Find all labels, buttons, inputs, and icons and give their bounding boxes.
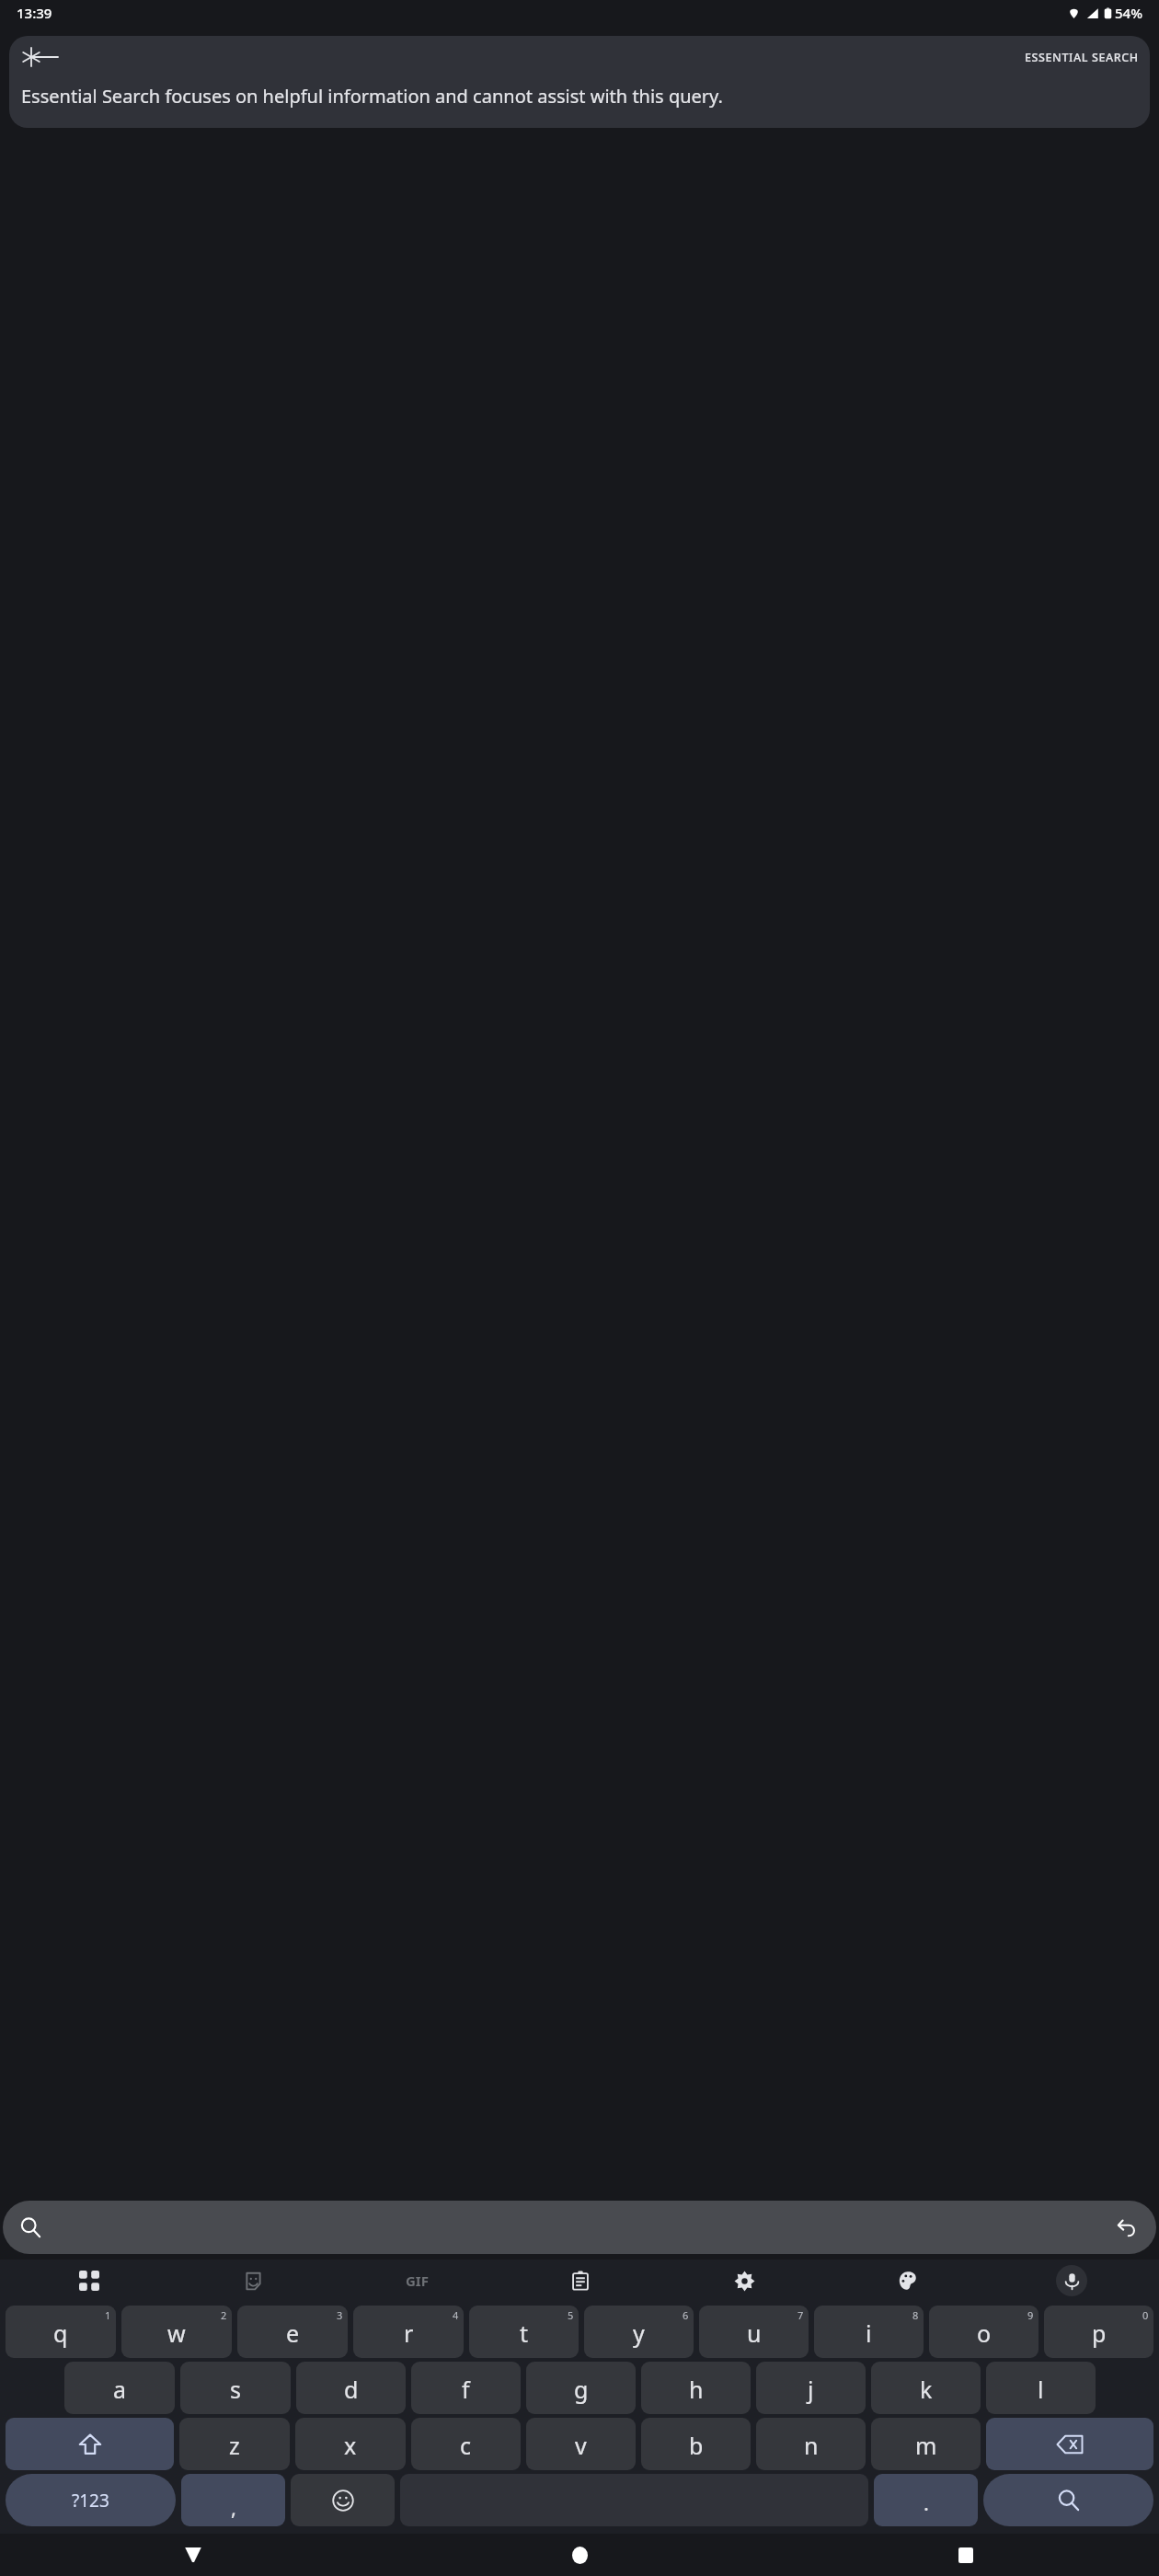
staticText: 0	[1142, 2308, 1149, 2322]
button[interactable]: Backspace	[986, 2418, 1153, 2470]
staticText: .	[924, 2489, 929, 2516]
button[interactable]: t	[469, 2306, 579, 2358]
button[interactable]: k	[871, 2362, 981, 2414]
staticText: d	[344, 2374, 359, 2405]
button[interactable]: Shift	[6, 2418, 174, 2470]
button[interactable]: GIF	[335, 2260, 499, 2302]
staticText: 9	[1027, 2308, 1034, 2322]
staticText: 54%	[1115, 4, 1142, 22]
button[interactable]: n	[756, 2418, 866, 2470]
staticText: 2	[221, 2308, 227, 2322]
staticText: 8	[912, 2308, 919, 2322]
button[interactable]: y	[584, 2306, 694, 2358]
staticText: o	[977, 2317, 992, 2349]
button[interactable]: .	[874, 2474, 978, 2526]
button[interactable]: q	[6, 2306, 116, 2358]
staticText: y	[633, 2317, 645, 2349]
button[interactable]: o	[929, 2306, 1039, 2358]
button[interactable]: w	[121, 2306, 232, 2358]
staticText: ESSENTIAL SEARCH	[1025, 50, 1139, 65]
staticText: 5	[568, 2308, 574, 2322]
button[interactable]: Voice input	[1056, 2265, 1087, 2296]
button[interactable]: l	[986, 2362, 1096, 2414]
button[interactable]: ,	[181, 2474, 285, 2526]
staticText: 1	[105, 2308, 111, 2322]
staticText: x	[344, 2430, 357, 2461]
staticText: l	[1038, 2374, 1044, 2405]
staticText: ,	[231, 2493, 236, 2521]
staticText: b	[689, 2430, 704, 2461]
staticText: 13:39	[17, 4, 52, 22]
button[interactable]: Hide keyboard	[0, 2534, 386, 2576]
button[interactable]: ESSENTIAL SEARCH	[9, 36, 1150, 128]
button[interactable]: e	[237, 2306, 348, 2358]
staticText: e	[286, 2317, 300, 2349]
staticText: g	[574, 2374, 589, 2405]
button[interactable]: z	[179, 2418, 290, 2470]
button[interactable]: ?123	[6, 2474, 176, 2526]
staticText: u	[747, 2317, 762, 2349]
button[interactable]: r	[353, 2306, 464, 2358]
button[interactable]: g	[526, 2362, 636, 2414]
button[interactable]: v	[526, 2418, 636, 2470]
staticText: p	[1092, 2317, 1107, 2349]
staticText: q	[53, 2317, 68, 2349]
staticText: 3	[337, 2308, 343, 2322]
staticText: f	[462, 2374, 470, 2405]
staticText: v	[575, 2430, 587, 2461]
staticText: i	[866, 2317, 872, 2349]
button[interactable]: Recents	[773, 2534, 1159, 2576]
button[interactable]: b	[641, 2418, 751, 2470]
staticText: w	[167, 2317, 186, 2349]
staticText: GIF	[406, 2271, 429, 2290]
staticText: t	[520, 2317, 529, 2349]
button[interactable]: Clipboard	[499, 2260, 662, 2302]
button[interactable]: Search	[3, 2201, 1156, 2254]
staticText: 6	[683, 2308, 689, 2322]
button[interactable]: Emoji	[291, 2474, 395, 2526]
button[interactable]: Undo	[1110, 2211, 1143, 2244]
button[interactable]: x	[295, 2418, 406, 2470]
button[interactable]: f	[411, 2362, 521, 2414]
button[interactable]: p	[1044, 2306, 1153, 2358]
button[interactable]: u	[699, 2306, 809, 2358]
staticText: ?123	[72, 2489, 109, 2513]
staticText: 7	[798, 2308, 804, 2322]
button[interactable]: Search	[983, 2474, 1153, 2526]
button[interactable]: d	[296, 2362, 406, 2414]
button[interactable]: Themes	[826, 2260, 990, 2302]
staticText: z	[229, 2430, 240, 2461]
button[interactable]: i	[814, 2306, 924, 2358]
button[interactable]: c	[411, 2418, 521, 2470]
button[interactable]: j	[756, 2362, 866, 2414]
staticText: m	[915, 2430, 937, 2461]
staticText: k	[920, 2374, 933, 2405]
staticText: s	[230, 2374, 241, 2405]
other: Search	[14, 2211, 47, 2244]
staticText: h	[689, 2374, 704, 2405]
staticText: c	[460, 2430, 472, 2461]
button[interactable]: Settings	[662, 2260, 826, 2302]
button[interactable]: m	[871, 2418, 981, 2470]
staticText: Essential Search focuses on helpful info…	[21, 84, 723, 109]
staticText: a	[113, 2374, 127, 2405]
staticText: n	[804, 2430, 819, 2461]
button[interactable]: s	[180, 2362, 291, 2414]
button[interactable]: h	[641, 2362, 751, 2414]
button[interactable]: Toolbar	[7, 2260, 171, 2302]
staticText: j	[808, 2374, 814, 2405]
button[interactable]: Stickers	[171, 2260, 335, 2302]
button[interactable]: Home	[386, 2534, 773, 2576]
staticText: r	[404, 2317, 414, 2349]
button[interactable]: a	[64, 2362, 175, 2414]
staticText: 4	[453, 2308, 459, 2322]
